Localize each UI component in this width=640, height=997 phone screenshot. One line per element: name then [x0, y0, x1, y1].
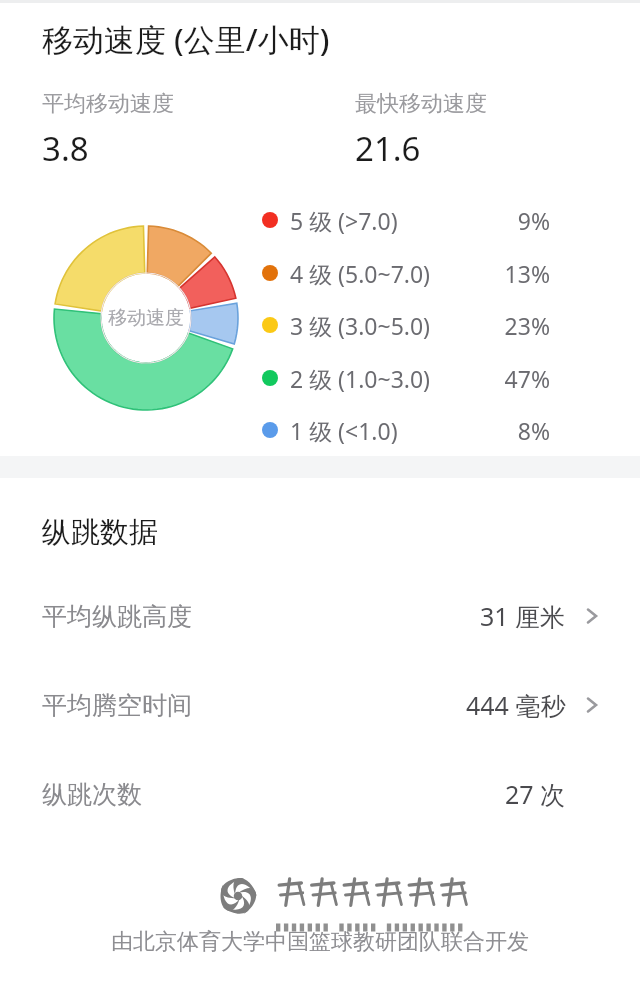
staticText: 27 次: [505, 777, 566, 811]
staticText: 13%: [504, 258, 550, 289]
staticText: 3.8: [42, 126, 89, 171]
staticText: 47%: [504, 363, 550, 394]
staticText: 由北京体育大学中国篮球教研团队联合开发: [0, 928, 640, 956]
button[interactable]: 2 级 (1.0~3.0): [262, 356, 550, 400]
staticText: 纵跳数据: [42, 514, 158, 551]
staticText: 9%: [517, 205, 550, 236]
staticText: 3 级 (3.0~5.0): [290, 310, 431, 341]
button[interactable]: 平均纵跳高度: [0, 585, 640, 647]
staticText: 平均腾空时间: [42, 690, 192, 721]
staticText: 21.6: [355, 126, 421, 171]
staticText: 8%: [517, 415, 550, 446]
button[interactable]: 平均腾空时间: [0, 674, 640, 736]
staticText: 23%: [504, 310, 550, 341]
button[interactable]: 1 级 (<1.0): [262, 408, 550, 452]
staticText: 2 级 (1.0~3.0): [290, 363, 431, 394]
other: 查看详情: [582, 606, 602, 626]
staticText: 5 级 (>7.0): [290, 205, 398, 236]
staticText: 移动速度: [108, 306, 184, 330]
staticText: 1 级 (<1.0): [290, 415, 398, 446]
staticText: 平均移动速度: [42, 90, 174, 118]
button[interactable]: 5 级 (>7.0): [262, 198, 550, 242]
button[interactable]: 4 级 (5.0~7.0): [262, 251, 550, 295]
staticText: 31 厘米: [480, 599, 566, 633]
staticText: 纵跳次数: [42, 779, 142, 810]
button[interactable]: 纵跳次数: [0, 763, 640, 825]
staticText: 平均纵跳高度: [42, 601, 192, 632]
other: 查看详情: [582, 695, 602, 715]
staticText: 444 毫秒: [466, 688, 566, 722]
staticText: 最快移动速度: [355, 90, 487, 118]
staticText: 4 级 (5.0~7.0): [290, 258, 431, 289]
staticText: 移动速度 (公里/小时): [42, 18, 330, 60]
button[interactable]: 3 级 (3.0~5.0): [262, 303, 550, 347]
